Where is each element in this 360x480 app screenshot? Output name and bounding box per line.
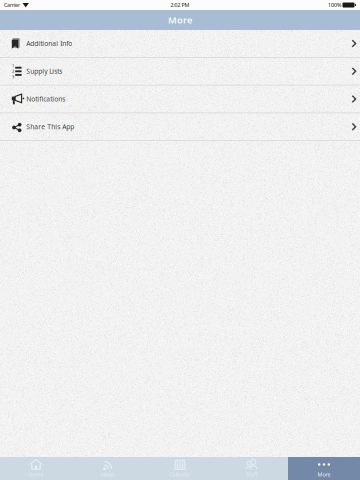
staticText: Notifications [26,95,65,103]
staticText: Calendar [169,471,190,478]
button[interactable]: Additional Info [0,30,360,58]
staticText: Supply Lists [26,67,62,76]
staticText: News [101,471,115,478]
staticText: 100% [328,1,341,9]
staticText: 2 [12,69,14,74]
staticText: Additional Info [26,39,72,48]
staticText: 1 [12,63,14,68]
button[interactable]: More [288,457,360,480]
staticText: More [168,14,192,26]
staticText: Carrier [4,1,20,9]
button[interactable]: Share This App [0,113,360,141]
button[interactable]: 1 [0,58,360,86]
staticText: More [317,471,330,478]
staticText: 2:02 PM [170,1,189,9]
button[interactable]: Calendar [144,457,216,480]
button[interactable]: News [72,457,144,480]
staticText: Share This App [26,122,74,131]
button[interactable]: Staff [216,457,288,480]
staticText: 3 [12,74,14,79]
staticText: Staff [246,471,258,478]
button[interactable]: Notifications [0,85,360,113]
staticText: Home [28,471,43,478]
button[interactable]: Home [0,457,72,480]
